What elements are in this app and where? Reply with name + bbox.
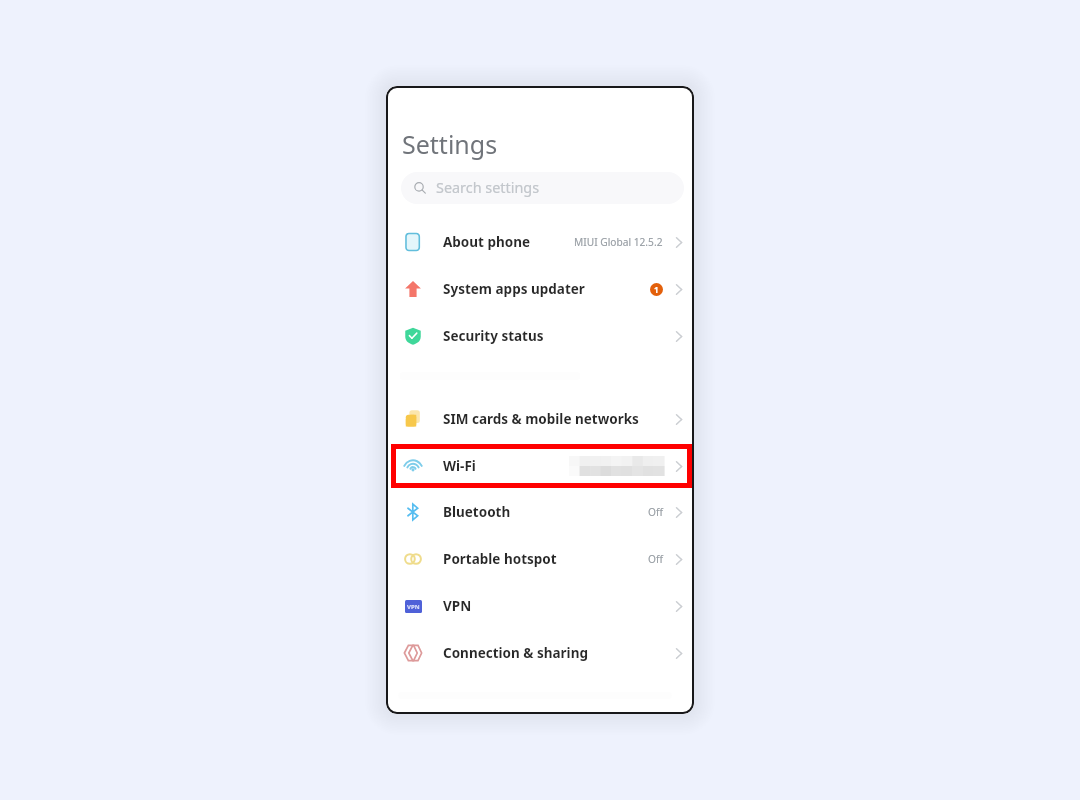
button[interactable]: Bluetooth bbox=[386, 489, 694, 535]
staticText: SIM cards & mobile networks bbox=[443, 410, 639, 428]
button[interactable]: System apps updater bbox=[386, 266, 694, 312]
staticText: MIUI Global 12.5.2 bbox=[574, 235, 663, 249]
staticText: Wi-Fi bbox=[443, 457, 476, 475]
button[interactable]: SIM cards & mobile networks bbox=[386, 396, 694, 442]
other: Open Bluetooth bbox=[672, 505, 687, 520]
other: Open Portable hotspot bbox=[672, 552, 687, 567]
other: Open SIM cards & mobile networks bbox=[672, 412, 687, 427]
staticText: VPN bbox=[407, 603, 420, 611]
staticText: Search settings bbox=[436, 178, 540, 198]
button[interactable]: Portable hotspot bbox=[386, 536, 694, 582]
staticText: VPN bbox=[443, 597, 472, 615]
button[interactable]: VPN bbox=[386, 583, 694, 629]
staticText: Security status bbox=[443, 327, 544, 345]
staticText: Bluetooth bbox=[443, 503, 511, 521]
other: Open Security status bbox=[672, 329, 687, 344]
staticText: Connection & sharing bbox=[443, 644, 588, 662]
button[interactable]: Security status bbox=[386, 313, 694, 359]
staticText: Off bbox=[648, 505, 663, 519]
staticText: Portable hotspot bbox=[443, 550, 557, 568]
other: Open System apps updater bbox=[672, 282, 687, 297]
other: Open About phone bbox=[672, 235, 687, 250]
other: Open VPN bbox=[672, 599, 687, 614]
button[interactable]: Wi-Fi bbox=[386, 443, 694, 489]
staticText: Off bbox=[648, 552, 663, 566]
staticText: System apps updater bbox=[443, 280, 585, 298]
staticText: 1 bbox=[654, 284, 659, 295]
other: 1 update available bbox=[650, 283, 663, 296]
button[interactable]: About phone bbox=[386, 219, 694, 265]
staticText: Settings bbox=[402, 127, 498, 161]
other: Open Connection & sharing bbox=[672, 646, 687, 661]
button[interactable]: Connection & sharing bbox=[386, 630, 694, 676]
other: Connected network name (hidden) bbox=[569, 456, 664, 476]
other: Open Wi-Fi bbox=[672, 459, 687, 474]
staticText: About phone bbox=[443, 233, 531, 251]
button[interactable]: Search settings bbox=[401, 172, 684, 204]
